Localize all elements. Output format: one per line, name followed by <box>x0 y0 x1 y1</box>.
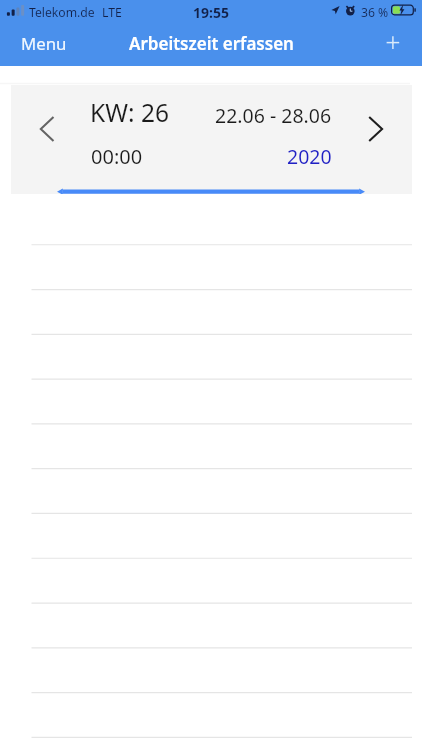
button[interactable] <box>0 380 422 425</box>
staticText: 19:55 <box>0 3 422 22</box>
button[interactable]: Previous week <box>19 107 63 151</box>
button[interactable] <box>0 470 422 515</box>
staticText: Menu <box>21 32 67 55</box>
button[interactable] <box>0 425 422 470</box>
button[interactable]: Next week <box>354 107 398 151</box>
button[interactable] <box>0 560 422 605</box>
button[interactable] <box>0 335 422 380</box>
staticText: LTE <box>102 4 122 21</box>
staticText: 2020 <box>287 143 332 170</box>
button[interactable]: Menu <box>0 24 85 65</box>
staticText: 36 % <box>361 4 389 21</box>
staticText: Telekom.de <box>29 4 95 21</box>
staticText: Arbeitszeit erfassen <box>129 32 294 55</box>
staticText: KW: 26 <box>90 96 169 129</box>
button[interactable] <box>0 695 422 740</box>
staticText: 22.06 - 28.06 <box>215 102 332 129</box>
staticText: 00:00 <box>91 143 143 170</box>
button[interactable] <box>0 650 422 695</box>
button[interactable] <box>0 245 422 290</box>
button[interactable] <box>0 605 422 650</box>
button[interactable]: Add entry <box>378 22 422 66</box>
button[interactable] <box>0 290 422 335</box>
